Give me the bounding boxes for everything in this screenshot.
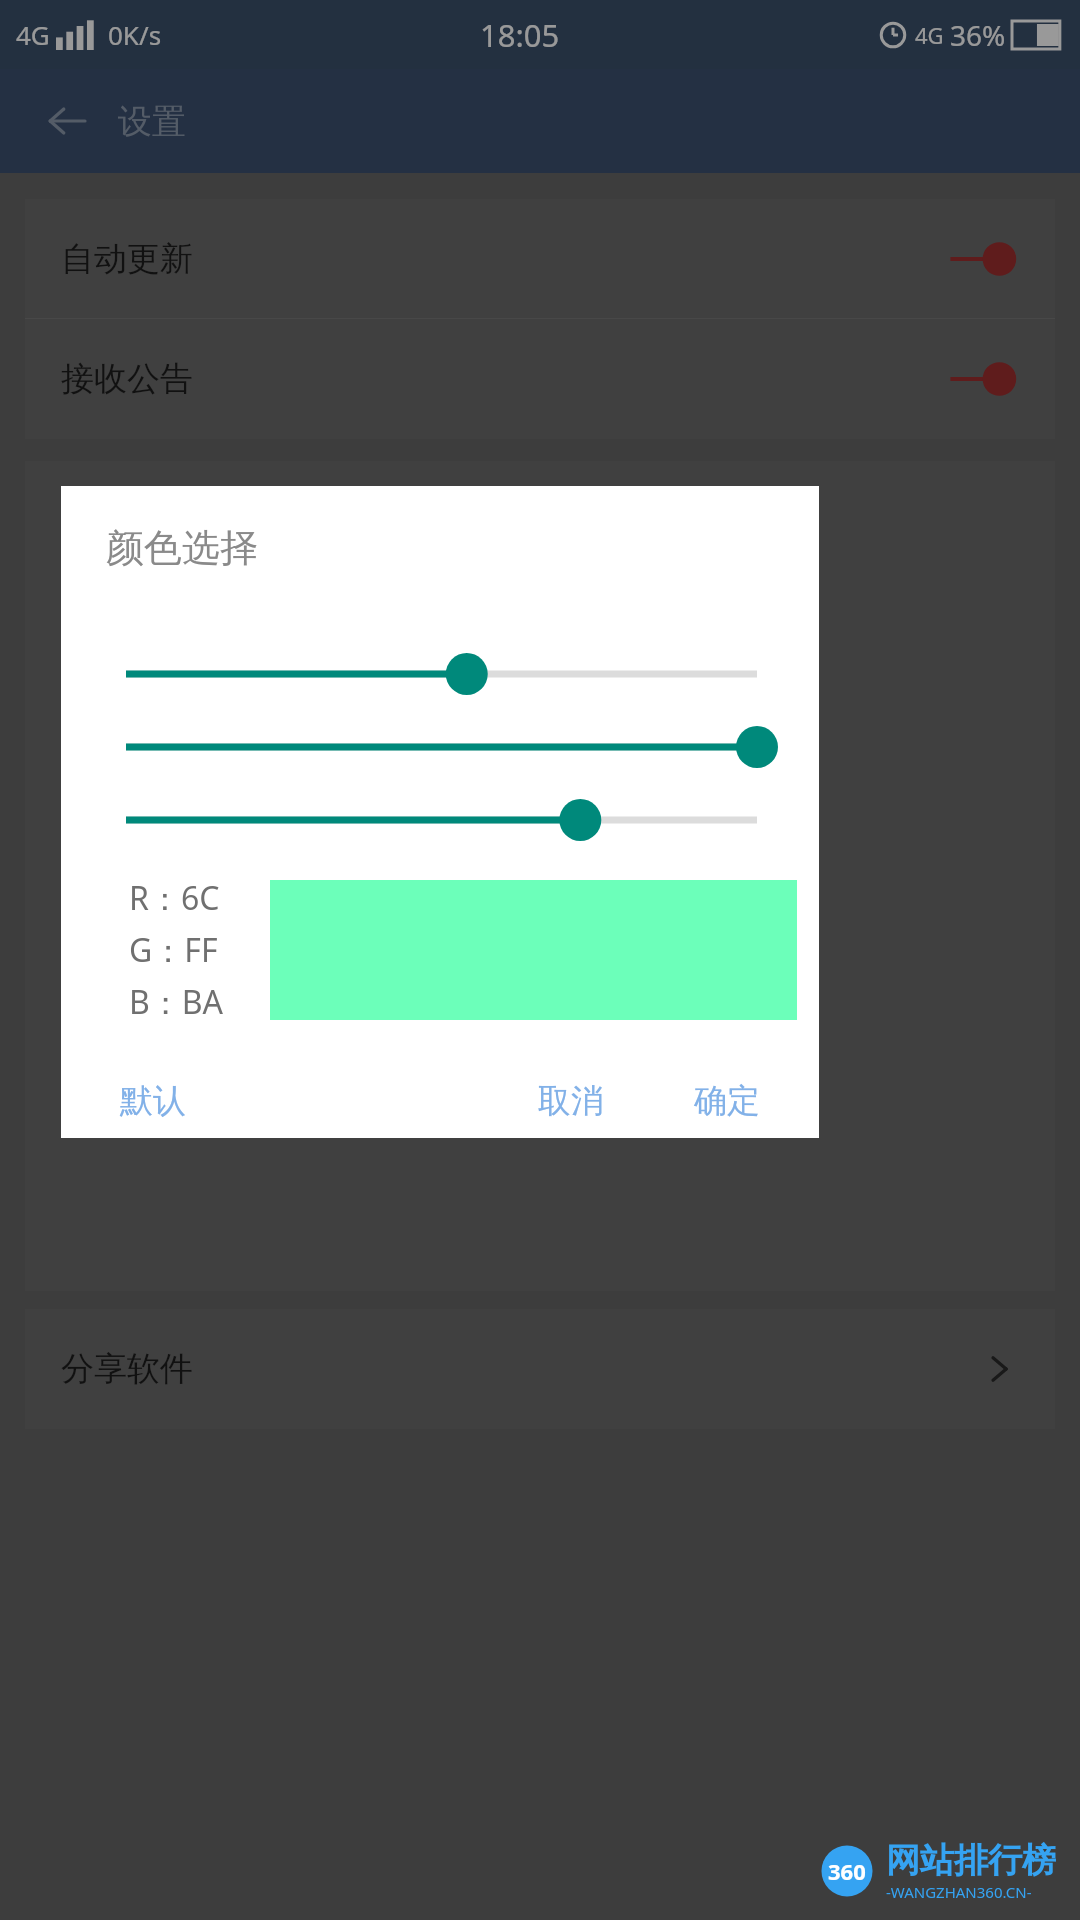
- button[interactable]: 分享软件: [25, 1309, 1055, 1429]
- staticText: 4G: [915, 20, 944, 50]
- staticText: 36%: [950, 16, 1006, 54]
- button[interactable]: [61, 654, 819, 694]
- staticText: 接收公告: [61, 358, 193, 400]
- button[interactable]: 取消: [524, 1070, 618, 1132]
- staticText: -WANGZHAN360.CN-: [886, 1882, 1032, 1902]
- staticText: 自动更新: [61, 238, 193, 280]
- staticText: 4G: [16, 17, 50, 52]
- staticText: G：FF: [129, 928, 218, 972]
- staticText: 默认: [120, 1080, 186, 1122]
- staticText: 0K/s: [108, 17, 162, 52]
- staticText: 18:05: [480, 14, 560, 56]
- staticText: 取消: [538, 1080, 604, 1122]
- staticText: 分享软件: [61, 1348, 193, 1390]
- staticText: 颜色选择: [106, 524, 258, 572]
- button[interactable]: 默认: [106, 1070, 200, 1132]
- button[interactable]: [61, 727, 819, 767]
- staticText: 网站排行榜: [886, 1839, 1056, 1882]
- staticText: 360: [828, 1856, 866, 1886]
- staticText: B：BA: [129, 980, 224, 1024]
- staticText: 设置: [118, 100, 186, 143]
- button[interactable]: [61, 800, 819, 840]
- button[interactable]: 接收公告: [25, 319, 1055, 438]
- staticText: 确定: [694, 1080, 760, 1122]
- button[interactable]: Back: [38, 92, 96, 150]
- button[interactable]: 自动更新: [25, 199, 1055, 318]
- staticText: R：6C: [129, 876, 220, 920]
- button[interactable]: 确定: [680, 1070, 774, 1132]
